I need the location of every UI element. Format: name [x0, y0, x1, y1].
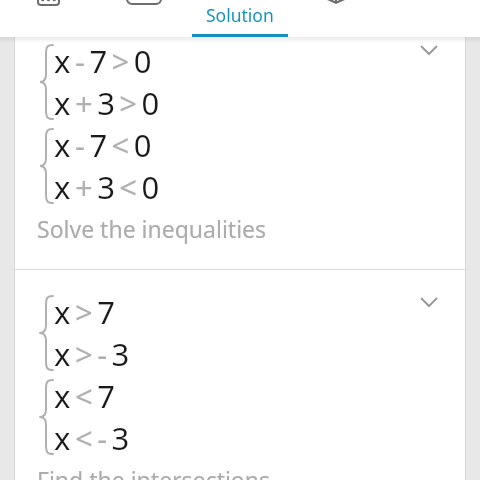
other: Keypad	[37, 0, 60, 6]
button[interactable]: Solution	[192, 0, 288, 37]
other: Problem	[126, 0, 162, 5]
other: Download solution	[327, 0, 345, 4]
staticText: x-7<0	[54, 124, 157, 166]
button[interactable]: x-7>0	[15, 37, 465, 269]
staticText: x<-3	[54, 417, 134, 459]
staticText: x<7	[54, 375, 120, 417]
staticText: Solve the inequalities	[37, 213, 267, 244]
staticText: x-7>0	[54, 40, 157, 82]
staticText: x>-3	[54, 333, 134, 375]
staticText: Find the intersections	[37, 464, 271, 480]
button[interactable]: Problem	[96, 0, 192, 37]
button[interactable]: Collapse step	[406, 283, 452, 321]
button[interactable]: Keypad	[0, 0, 96, 37]
staticText: x>7	[54, 291, 120, 333]
button[interactable]: Download solution	[288, 0, 384, 37]
staticText: Solution	[206, 3, 274, 27]
staticText: x+3<0	[54, 166, 164, 208]
button[interactable]: x>7	[15, 270, 465, 480]
staticText: x+3>0	[54, 82, 164, 124]
button[interactable]: Collapse step	[406, 31, 452, 69]
